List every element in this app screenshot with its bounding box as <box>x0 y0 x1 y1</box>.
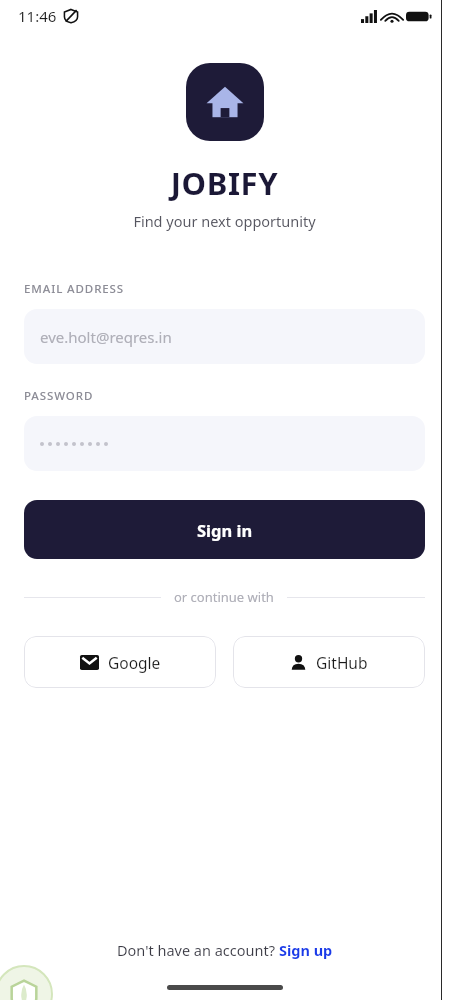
button[interactable]: Google <box>24 636 216 688</box>
button[interactable] <box>24 416 425 471</box>
staticText: PASSWORD <box>24 388 94 404</box>
staticText: 11:46 <box>18 6 57 26</box>
staticText: Find your next opportunity <box>0 211 449 231</box>
staticText: JOBIFY <box>0 162 449 204</box>
staticText: Don't have an account? <box>117 940 279 960</box>
button[interactable]: eve.holt@reqres.in <box>24 309 425 364</box>
staticText: Sign up <box>279 940 333 960</box>
staticText: or continue with <box>174 588 274 606</box>
staticText: eve.holt@reqres.in <box>40 327 172 347</box>
staticText: Sign in <box>197 519 253 541</box>
button[interactable]: Sign up <box>279 940 333 960</box>
staticText: Google <box>108 652 161 673</box>
button[interactable]: Sign in <box>24 500 425 559</box>
staticText: GitHub <box>316 652 368 673</box>
button[interactable]: GitHub <box>233 636 425 688</box>
staticText: EMAIL ADDRESS <box>24 281 125 297</box>
